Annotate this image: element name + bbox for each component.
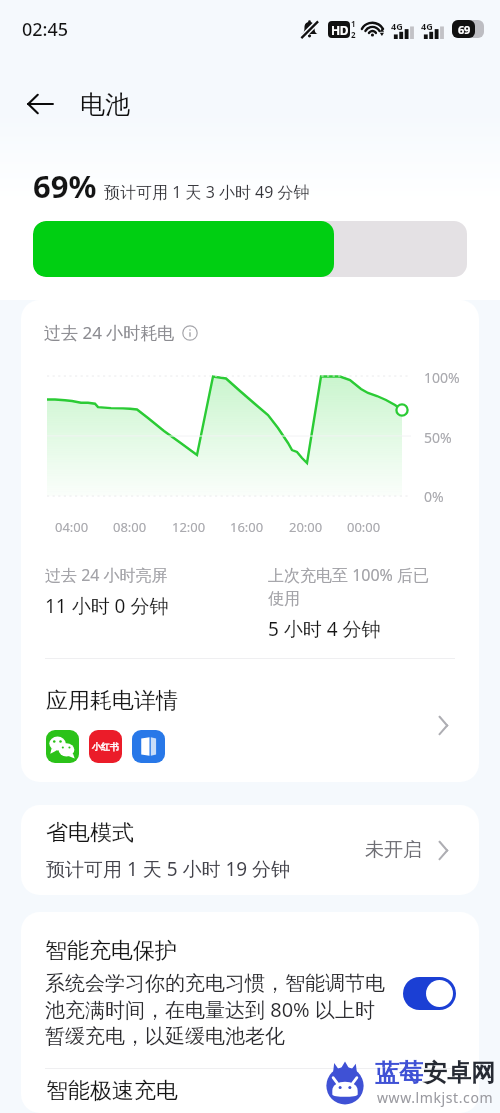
staticText: 省电模式 [46,819,134,847]
staticText: 5 小时 4 分钟 [268,616,381,642]
staticText: 蓝莓 [375,1058,423,1088]
button[interactable]: About battery usage [182,325,198,341]
staticText: 69 [458,22,470,37]
staticText: 04:00 [55,518,89,536]
staticText: 小红书 [92,741,119,752]
staticText: 电池 [80,89,130,120]
staticText: 20:00 [289,518,323,536]
staticText: 预计可用 1 天 5 小时 19 分钟 [46,856,291,882]
staticText: 过去 24 小时耗电 [44,321,175,344]
button[interactable]: 省电模式 [21,805,479,895]
staticText: HD [331,22,348,38]
staticText: 12:00 [172,518,206,536]
staticText: 安卓网 [423,1058,495,1088]
staticText: 智能充电保护 [45,937,177,965]
button[interactable]: 智能极速充电 [21,1069,479,1113]
staticText: 上次充电至 100% 后已 使用 [268,564,430,609]
staticText: 69% [33,165,97,207]
staticText: 未开启 [365,838,422,862]
staticText: www.lmkjst.com [377,1088,494,1107]
button[interactable]: Back [14,78,66,130]
staticText: 智能极速充电 [46,1077,178,1105]
staticText: 过去 24 小时亮屏 [45,564,168,586]
staticText: 16:00 [230,518,264,536]
staticText: 08:00 [113,518,147,536]
staticText: 系统会学习你的充电习惯，智能调节电 池充满时间，在电量达到 80% 以上时 暂缓… [45,971,385,1049]
staticText: 4G [421,20,433,32]
staticText: 1 [351,18,356,29]
staticText: 4G [391,20,403,32]
staticText: 应用耗电详情 [46,687,178,715]
button[interactable]: Smart charge toggle [403,977,456,1010]
staticText: 预计可用 1 天 3 小时 49 分钟 [104,181,310,203]
staticText: 0% [424,487,444,506]
staticText: 00:00 [347,518,381,536]
staticText: 02:45 [22,17,69,42]
staticText: 11 小时 0 分钟 [45,593,169,619]
staticText: 100% [424,368,460,387]
button[interactable]: 应用耗电详情 [21,670,479,780]
staticText: 2 [351,29,356,40]
staticText: 50% [424,428,452,447]
